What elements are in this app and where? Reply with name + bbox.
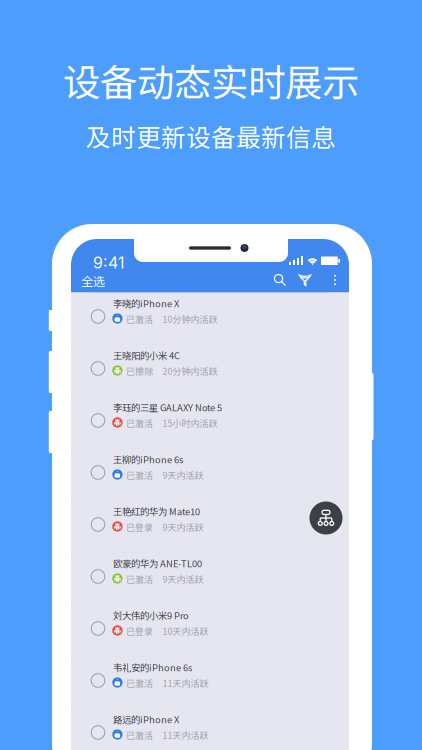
staticText: 已激活	[126, 676, 153, 689]
staticText: 已激活	[126, 572, 153, 585]
staticText: 李珏的三星 GALAXY Note 5	[113, 400, 222, 414]
staticText: 15小时内活跃	[162, 416, 217, 429]
staticText: 11天内活跃	[162, 676, 208, 689]
staticText: 李晓的iPhone X	[113, 296, 179, 310]
staticText: 王艳红的华为 Mate10	[113, 504, 200, 518]
staticText: 欧豪的华为 ANE-TL00	[113, 556, 202, 570]
staticText: 9天内活跃	[162, 520, 203, 533]
staticText: 韦礼安的iPhone 6s	[113, 660, 192, 674]
button[interactable]: 筛选	[0, 0, 422, 750]
staticText: 11天内活跃	[162, 728, 208, 741]
staticText: 20分钟内活跃	[162, 364, 217, 377]
staticText: 路远的iPhone X	[113, 712, 179, 726]
button[interactable]: 更多	[0, 0, 422, 750]
staticText: 王柳的iPhone 6s	[113, 452, 183, 466]
staticText: 已激活	[126, 468, 153, 481]
staticText: 全选	[81, 272, 105, 289]
staticText: 9:41	[93, 253, 125, 272]
staticText: 刘大伟的小米9 Pro	[113, 608, 189, 622]
staticText: 设备动态实时展示	[63, 53, 359, 107]
staticText: 已登录	[126, 520, 153, 533]
staticText: 已登录	[126, 624, 153, 637]
staticText: 9天内活跃	[162, 572, 203, 585]
staticText: 已激活	[126, 728, 153, 741]
staticText: 9天内活跃	[162, 468, 203, 481]
button[interactable]: 全选	[0, 0, 422, 750]
staticText: 已擦除	[126, 364, 153, 377]
staticText: 已激活	[126, 416, 153, 429]
staticText: 10天内活跃	[162, 624, 208, 637]
button[interactable]: 搜索	[0, 0, 422, 750]
staticText: 及时更新设备最新信息	[86, 118, 336, 154]
staticText: 已激活	[126, 312, 153, 325]
staticText: 10分钟内活跃	[162, 312, 217, 325]
staticText: 王晓阳的小米 4C	[113, 348, 180, 362]
button[interactable]: 设备拓扑	[0, 0, 422, 750]
